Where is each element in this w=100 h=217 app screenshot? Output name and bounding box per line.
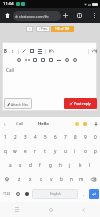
button[interactable]: 9 [80,130,90,144]
button[interactable]: o [80,144,90,158]
button[interactable]: Emoji [13,186,22,201]
button[interactable]: ‹ Prev [36,26,50,32]
button[interactable]: 7 [60,130,70,144]
button[interactable]: n [66,172,76,186]
staticText: j [69,162,71,168]
button[interactable]: 6 [50,130,60,144]
button[interactable]: q [0,144,10,158]
button[interactable]: Home [34,202,67,217]
button[interactable]: Post reply [64,98,97,109]
staticText: 11:04 [3,1,14,7]
staticText: w [13,148,17,154]
button[interactable]: . [79,186,88,201]
button[interactable]: Divider [55,56,63,64]
staticText: 0 [94,134,97,140]
button[interactable]: More options [90,11,99,20]
staticText: p [94,148,97,154]
button[interactable]: g [45,158,55,172]
button[interactable]: Spoiler [63,56,71,64]
button[interactable]: Home [3,11,12,20]
staticText: Call [16,121,24,127]
button[interactable]: Insert image [28,46,36,56]
button[interactable]: 2 [10,130,20,144]
staticText: z [18,176,21,182]
button[interactable]: 8 [70,130,80,144]
button[interactable]: z [14,172,25,186]
button[interactable]: Attach files [4,98,32,109]
button[interactable]: l [85,158,95,172]
button[interactable]: Backspace [86,172,100,186]
staticText: 2 [14,134,17,140]
staticText: n [70,176,73,182]
button[interactable]: u [60,144,70,158]
button[interactable]: 0 [90,130,100,144]
button[interactable]: v [46,172,56,186]
button[interactable]: m [76,172,86,186]
button[interactable]: Undo [47,46,55,56]
button[interactable]: Italic [9,46,16,56]
button[interactable]: Bold [2,46,9,56]
button[interactable]: Hello [31,117,56,130]
button[interactable]: Redo [90,46,98,56]
button[interactable]: Tabs [75,11,84,20]
staticText: Call [6,67,14,73]
button[interactable]: 3 [20,130,30,144]
button[interactable]: Table [47,56,55,64]
button[interactable]: Quote [23,56,31,64]
button[interactable]: Enter [89,189,99,199]
button[interactable]: b [56,172,66,186]
button[interactable]: 5 [40,130,50,144]
button[interactable]: New tab [61,11,70,20]
button[interactable]: 185 of 185 [51,26,74,32]
button[interactable]: c [36,172,46,186]
button[interactable]: Emoji [15,56,23,64]
staticText: Post reply [74,101,91,106]
button[interactable]: Insert link [20,46,28,56]
staticText: y [54,148,57,154]
button[interactable]: 4 [30,130,40,144]
button[interactable]: ?123 [0,186,13,201]
staticText: ?123 [3,191,11,196]
staticText: chatzozo.com/fo [19,14,49,19]
button[interactable]: r [30,144,40,158]
button[interactable]: Call [9,117,31,130]
button[interactable]: y [50,144,60,158]
button[interactable]: d [25,158,35,172]
button[interactable]: f [35,158,45,172]
button[interactable]: s [15,158,25,172]
staticText: o [84,148,87,154]
staticText: 9 [84,134,87,140]
button[interactable]: Code [39,56,47,64]
button[interactable]: « [26,26,33,32]
staticText: « [29,27,31,31]
button[interactable]: Media [31,56,39,64]
staticText: b [60,176,63,182]
button[interactable]: More suggestions [0,117,9,130]
button[interactable]: Extra [71,56,79,64]
staticText: m [79,176,84,182]
button[interactable]: More tools [36,46,44,56]
button[interactable]: k [75,158,85,172]
staticText: f [39,162,41,168]
button[interactable]: Shift [0,172,14,186]
staticText: 6 [54,134,57,140]
button[interactable]: p [90,144,100,158]
button[interactable]: h [55,158,65,172]
button[interactable]: x [25,172,36,186]
button[interactable]: e [20,144,30,158]
staticText: s [19,162,22,168]
staticText: a [9,162,12,168]
button[interactable]: t [40,144,50,158]
button[interactable]: j [65,158,75,172]
button[interactable]: chatzozo.com/fo [13,11,61,21]
staticText: h [59,162,62,168]
button[interactable]: 1 [0,130,10,144]
button[interactable]: a [5,158,15,172]
button[interactable]: English [32,189,78,199]
button[interactable]: i [70,144,80,158]
button[interactable]: Download [91,117,100,130]
button[interactable]: w [10,144,20,158]
button[interactable]: Recent apps [0,202,34,217]
button[interactable]: Voice input [22,186,31,201]
